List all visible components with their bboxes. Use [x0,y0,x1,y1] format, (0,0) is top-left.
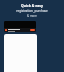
staticText: registration, purchase [0,9,64,13]
button[interactable] [4,28,36,32]
button[interactable] [4,21,36,29]
staticText: & more [0,14,64,18]
staticText: Quick & easy [0,3,64,8]
